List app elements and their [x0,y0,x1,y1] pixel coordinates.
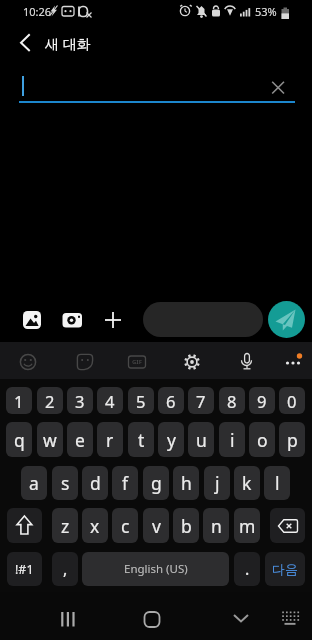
button[interactable]: t [128,422,154,457]
button[interactable]: v [143,508,169,543]
button[interactable]: 4 [97,387,123,414]
button[interactable] [278,344,310,376]
button[interactable]: p [279,422,305,457]
staticText: 53% [255,4,277,19]
button[interactable] [232,347,262,377]
button[interactable] [268,301,305,338]
button[interactable] [53,604,83,634]
staticText: 3 [75,390,85,412]
button[interactable]: g [143,466,169,500]
button[interactable]: q [6,422,32,457]
button[interactable]: z [52,508,78,543]
button[interactable] [143,302,263,337]
button[interactable] [17,305,47,335]
button[interactable]: 3 [67,387,93,414]
button[interactable]: English (US) [82,552,229,586]
button[interactable] [57,305,87,335]
staticText: k [242,471,252,495]
button[interactable] [8,28,42,58]
button[interactable]: d [82,466,108,500]
button[interactable]: . [234,552,260,586]
staticText: 6 [166,390,176,412]
staticText: c [121,514,130,538]
staticText: r [106,428,114,452]
button[interactable]: x [82,508,108,543]
button[interactable] [137,604,167,634]
staticText: i [230,428,235,452]
staticText: 4 [105,390,115,412]
button[interactable]: , [52,552,78,586]
button[interactable]: 8 [219,387,245,414]
staticText: x [90,514,100,538]
button[interactable]: 6 [158,387,184,414]
staticText: p [287,428,298,452]
staticText: o [257,428,268,452]
staticText: 다음 [272,561,298,577]
staticText: b [181,514,192,538]
button[interactable] [70,347,100,377]
staticText: 10:26 [23,4,52,19]
button[interactable]: l [264,466,290,500]
staticText: , [63,558,68,580]
button[interactable]: GIF [122,347,152,377]
staticText: . [245,558,250,580]
staticText: q [14,428,25,452]
button[interactable] [226,603,256,633]
button[interactable]: r [97,422,123,457]
button[interactable]: 7 [188,387,214,414]
button[interactable]: y [158,422,184,457]
button[interactable]: 2 [37,387,63,414]
button[interactable] [270,508,305,543]
staticText: s [61,471,70,495]
button[interactable]: 1 [6,387,32,414]
button[interactable]: s [52,466,78,500]
staticText: 1 [14,390,24,412]
button[interactable]: m [234,508,260,543]
staticText: y [167,428,176,452]
staticText: g [151,471,162,495]
staticText: e [75,428,85,452]
staticText: 0 [287,390,297,412]
staticText: d [90,471,101,495]
button[interactable]: h [173,466,199,500]
staticText: 5 [136,390,146,412]
button[interactable] [266,75,291,100]
button[interactable] [7,508,42,543]
staticText: !#1 [15,561,34,578]
button[interactable]: i [219,422,245,457]
button[interactable] [177,347,207,377]
staticText: 8 [227,390,237,412]
staticText: 새 대화 [45,34,91,53]
button[interactable]: b [173,508,199,543]
staticText: GIF [132,358,142,366]
button[interactable] [275,604,305,634]
button[interactable]: n [203,508,229,543]
staticText: w [43,428,57,452]
staticText: 7 [196,390,206,412]
button[interactable]: 다음 [265,552,305,586]
button[interactable] [98,305,128,335]
button[interactable]: e [67,422,93,457]
button[interactable]: j [204,466,230,500]
button[interactable]: o [249,422,275,457]
staticText: m [239,514,256,538]
staticText: z [61,514,70,538]
button[interactable]: w [37,422,63,457]
staticText: English (US) [124,561,188,577]
staticText: 9 [257,390,267,412]
button[interactable]: u [188,422,214,457]
button[interactable]: 0 [279,387,305,414]
staticText: t [138,428,145,452]
button[interactable]: a [21,466,47,500]
button[interactable]: 5 [128,387,154,414]
staticText: n [211,514,222,538]
button[interactable]: !#1 [7,552,42,586]
staticText: f [122,471,129,495]
button[interactable]: k [234,466,260,500]
button[interactable]: f [112,466,138,500]
button[interactable] [13,347,43,377]
button[interactable]: c [112,508,138,543]
staticText: j [215,471,220,495]
staticText: v [152,514,161,538]
button[interactable]: 9 [249,387,275,414]
